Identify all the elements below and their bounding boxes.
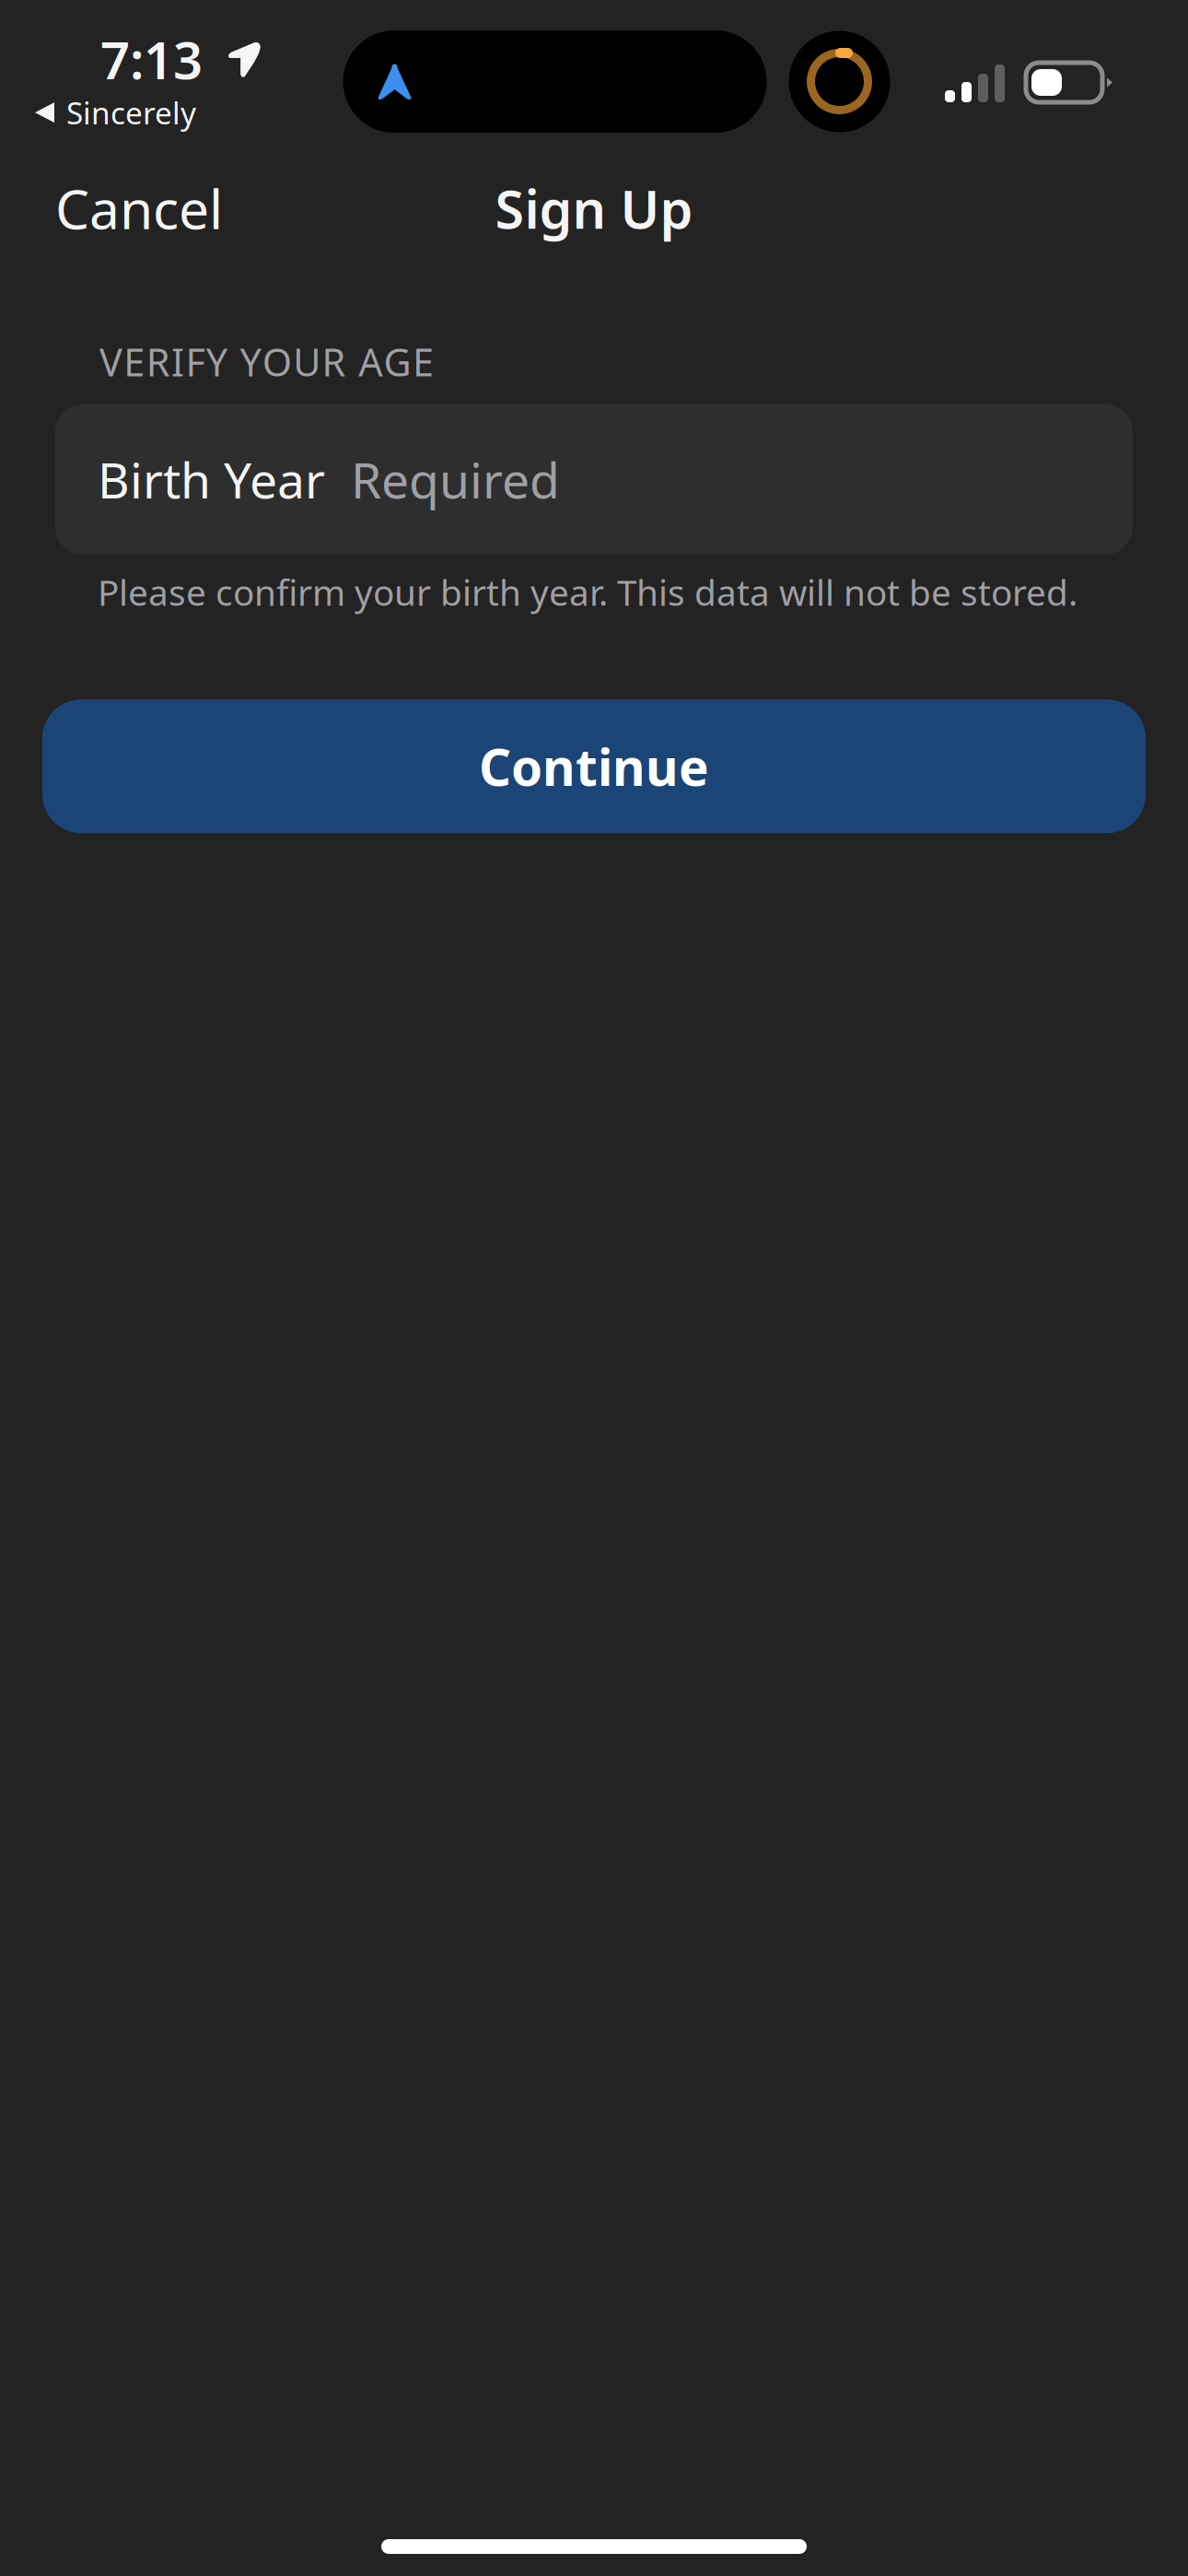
staticText: Birth Year xyxy=(98,447,325,512)
button[interactable]: Cancel xyxy=(0,152,250,264)
button[interactable]: Continue xyxy=(42,699,1146,833)
staticText: Sincerely xyxy=(66,92,196,133)
staticText: Sign Up xyxy=(495,173,693,243)
staticText: Cancel xyxy=(55,172,223,244)
staticText: Please confirm your birth year. This dat… xyxy=(98,568,1077,616)
staticText: Continue xyxy=(479,733,709,800)
staticText: Required xyxy=(351,447,560,512)
staticText: 7:13 xyxy=(100,25,203,93)
button[interactable]: Birth Year, Required xyxy=(55,404,1133,555)
staticText: VERIFY YOUR AGE xyxy=(99,336,434,387)
